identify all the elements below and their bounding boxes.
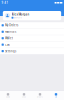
staticText: Orders — [37, 96, 43, 98]
staticText: ID 8842013 — [14, 17, 22, 19]
staticText: Favorites — [5, 30, 16, 33]
button[interactable]: Me — [48, 92, 64, 99]
staticText: Home — [6, 96, 10, 98]
staticText: Cart — [5, 43, 10, 46]
button[interactable]: Home — [0, 92, 16, 99]
staticText: Settings — [5, 49, 16, 53]
button[interactable]: Alex Morgan — [3, 11, 61, 20]
button[interactable]: Cart — [0, 41, 64, 48]
staticText: 9:41 — [2, 1, 9, 4]
staticText: Me — [55, 96, 57, 98]
staticText: Alex Morgan — [12, 13, 30, 16]
staticText: My Orders — [5, 23, 18, 27]
button[interactable]: Orders — [32, 92, 48, 99]
staticText: Wallet — [5, 36, 13, 40]
button[interactable]: Wallet — [0, 35, 64, 41]
button[interactable]: Favorites — [0, 28, 64, 35]
button[interactable]: Settings — [0, 48, 64, 54]
button[interactable]: Shop — [16, 92, 32, 99]
button[interactable]: My Orders — [0, 22, 64, 28]
